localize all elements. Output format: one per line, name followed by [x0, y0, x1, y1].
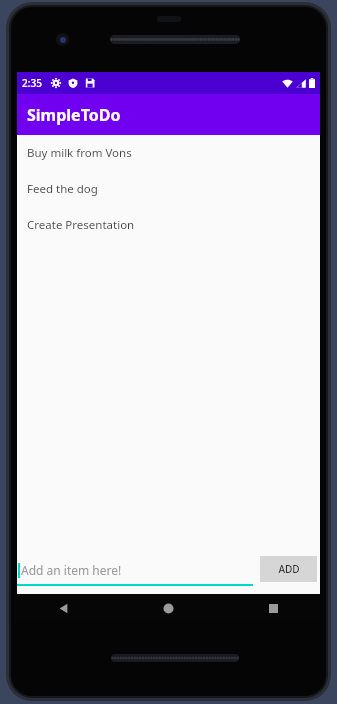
button[interactable]: Feed the dog: [17, 171, 320, 207]
button[interactable]: Create Presentation: [17, 207, 320, 243]
staticText: 2:35: [22, 76, 42, 90]
button[interactable]: ADD: [260, 556, 317, 582]
button[interactable]: Buy milk from Vons: [17, 135, 320, 171]
button[interactable]: Back: [11, 594, 116, 622]
staticText: Feed the dog: [27, 181, 98, 197]
button[interactable]: Home: [116, 594, 221, 622]
staticText: Buy milk from Vons: [27, 145, 132, 161]
button[interactable]: SimpleToDo: [17, 94, 320, 135]
staticText: Add an item here!: [21, 562, 122, 578]
staticText: SimpleToDo: [27, 104, 121, 126]
button[interactable]: Recent apps: [221, 594, 326, 622]
staticText: Create Presentation: [27, 217, 135, 233]
staticText: ADD: [278, 562, 300, 576]
button[interactable]: Add an item here!: [17, 553, 253, 595]
